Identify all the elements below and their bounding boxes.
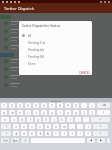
staticText: 2 (11, 104, 13, 108)
button[interactable]: ] (89, 110, 95, 115)
button[interactable]: / (85, 124, 91, 129)
button[interactable]: ) (69, 131, 75, 136)
staticText: Sym (12, 139, 18, 143)
staticText: $ (31, 132, 33, 136)
button[interactable]: Pending Bill (19, 53, 92, 60)
button[interactable]: t (33, 110, 39, 115)
button[interactable]: CANCEL (77, 70, 92, 75)
button[interactable]: 8 (57, 103, 63, 108)
button[interactable]: y (41, 110, 47, 115)
button[interactable]: ( (61, 131, 67, 136)
button[interactable]: r (25, 110, 31, 115)
button[interactable]: 5 (33, 103, 39, 108)
button[interactable]: ◎ (21, 138, 29, 143)
button[interactable]: n (53, 124, 59, 129)
button[interactable]: Tanker (0, 19, 112, 27)
staticText: a (4, 118, 6, 122)
button[interactable]: Tanker (0, 65, 112, 73)
button[interactable]: + (89, 103, 95, 108)
button[interactable]: Sym (11, 138, 19, 143)
button[interactable]: ' (83, 117, 89, 122)
button[interactable]: Tanker (0, 81, 112, 89)
other: Tanker (4, 83, 8, 88)
staticText: m (63, 125, 66, 129)
button[interactable]: Tanker (0, 27, 112, 35)
button[interactable]: g (35, 117, 41, 122)
button[interactable]: f (27, 117, 33, 122)
button[interactable]: j (51, 117, 57, 122)
button[interactable]: $ (29, 131, 35, 136)
button[interactable]: c (29, 124, 35, 129)
button[interactable]: - (81, 103, 87, 108)
button[interactable]: e (17, 110, 23, 115)
button[interactable]: \ (97, 110, 110, 115)
button[interactable]: # (21, 131, 27, 136)
button[interactable]: Pending Trip (19, 39, 92, 46)
button[interactable]: * (53, 131, 59, 136)
button[interactable]: ⇧ (1, 124, 11, 129)
button[interactable]: ⌫ (97, 103, 110, 108)
button[interactable]: @ (13, 131, 19, 136)
staticText: 0 (75, 104, 77, 108)
button[interactable]: z (13, 124, 19, 129)
button[interactable]: , (69, 124, 75, 129)
button[interactable]: Ctrl (1, 138, 9, 143)
button[interactable]: o (65, 110, 71, 115)
staticText: ( (64, 132, 65, 136)
staticText: . (80, 125, 81, 129)
button[interactable]: ? (85, 131, 91, 136)
button[interactable]: x (21, 124, 27, 129)
button[interactable]: p (73, 110, 79, 115)
button[interactable]: l (67, 117, 73, 122)
button[interactable]: q (1, 110, 7, 115)
button[interactable]: ! (77, 131, 83, 136)
staticText: Pending Bill (28, 55, 45, 59)
button[interactable]: h (43, 117, 49, 122)
button[interactable]: Done (19, 60, 92, 67)
button[interactable]: u (49, 110, 55, 115)
button[interactable]: 7 (49, 103, 55, 108)
button[interactable]: Tanker (0, 73, 112, 81)
staticText: @ (15, 132, 18, 136)
button[interactable]: i (57, 110, 63, 115)
button[interactable]: ◀ (87, 138, 95, 143)
button[interactable]: All (19, 32, 92, 39)
button[interactable]: v (37, 124, 43, 129)
button[interactable]: ↵ (91, 117, 110, 122)
staticText: [ (84, 111, 85, 115)
button[interactable]: [ (81, 110, 87, 115)
button[interactable]: 9 (65, 103, 71, 108)
button[interactable]: m (61, 124, 67, 129)
button[interactable]: & (45, 131, 51, 136)
button[interactable]: ⇧ (1, 131, 11, 136)
button[interactable]: 4 (25, 103, 31, 108)
button[interactable]: 3 (17, 103, 23, 108)
other: Tanker (4, 67, 8, 72)
button[interactable]: % (37, 131, 43, 136)
button[interactable]: 0 (73, 103, 79, 108)
button[interactable]: 2 (9, 103, 15, 108)
button[interactable]: a (1, 117, 9, 122)
button[interactable]: s (11, 117, 17, 122)
button[interactable]: 1 (1, 103, 7, 108)
button[interactable]: Tanker (0, 35, 112, 43)
button[interactable]: Tanker (0, 43, 112, 51)
button[interactable]: ; (75, 117, 81, 122)
button[interactable]: Tanker Dispatch (0, 3, 112, 13)
staticText: s (13, 118, 15, 122)
button[interactable]: ▶ (97, 138, 105, 143)
button[interactable]: 6 (41, 103, 47, 108)
button[interactable]: d (19, 117, 25, 122)
button[interactable]: ⇧ (93, 124, 108, 129)
button[interactable]: w (9, 110, 15, 115)
button[interactable]: ⇧ (93, 131, 108, 136)
button[interactable]: b (45, 124, 51, 129)
button[interactable]: k (59, 117, 65, 122)
button[interactable]: . (77, 124, 83, 129)
button[interactable]: Tanker (0, 57, 112, 65)
button[interactable]: Pending Job (19, 46, 92, 53)
